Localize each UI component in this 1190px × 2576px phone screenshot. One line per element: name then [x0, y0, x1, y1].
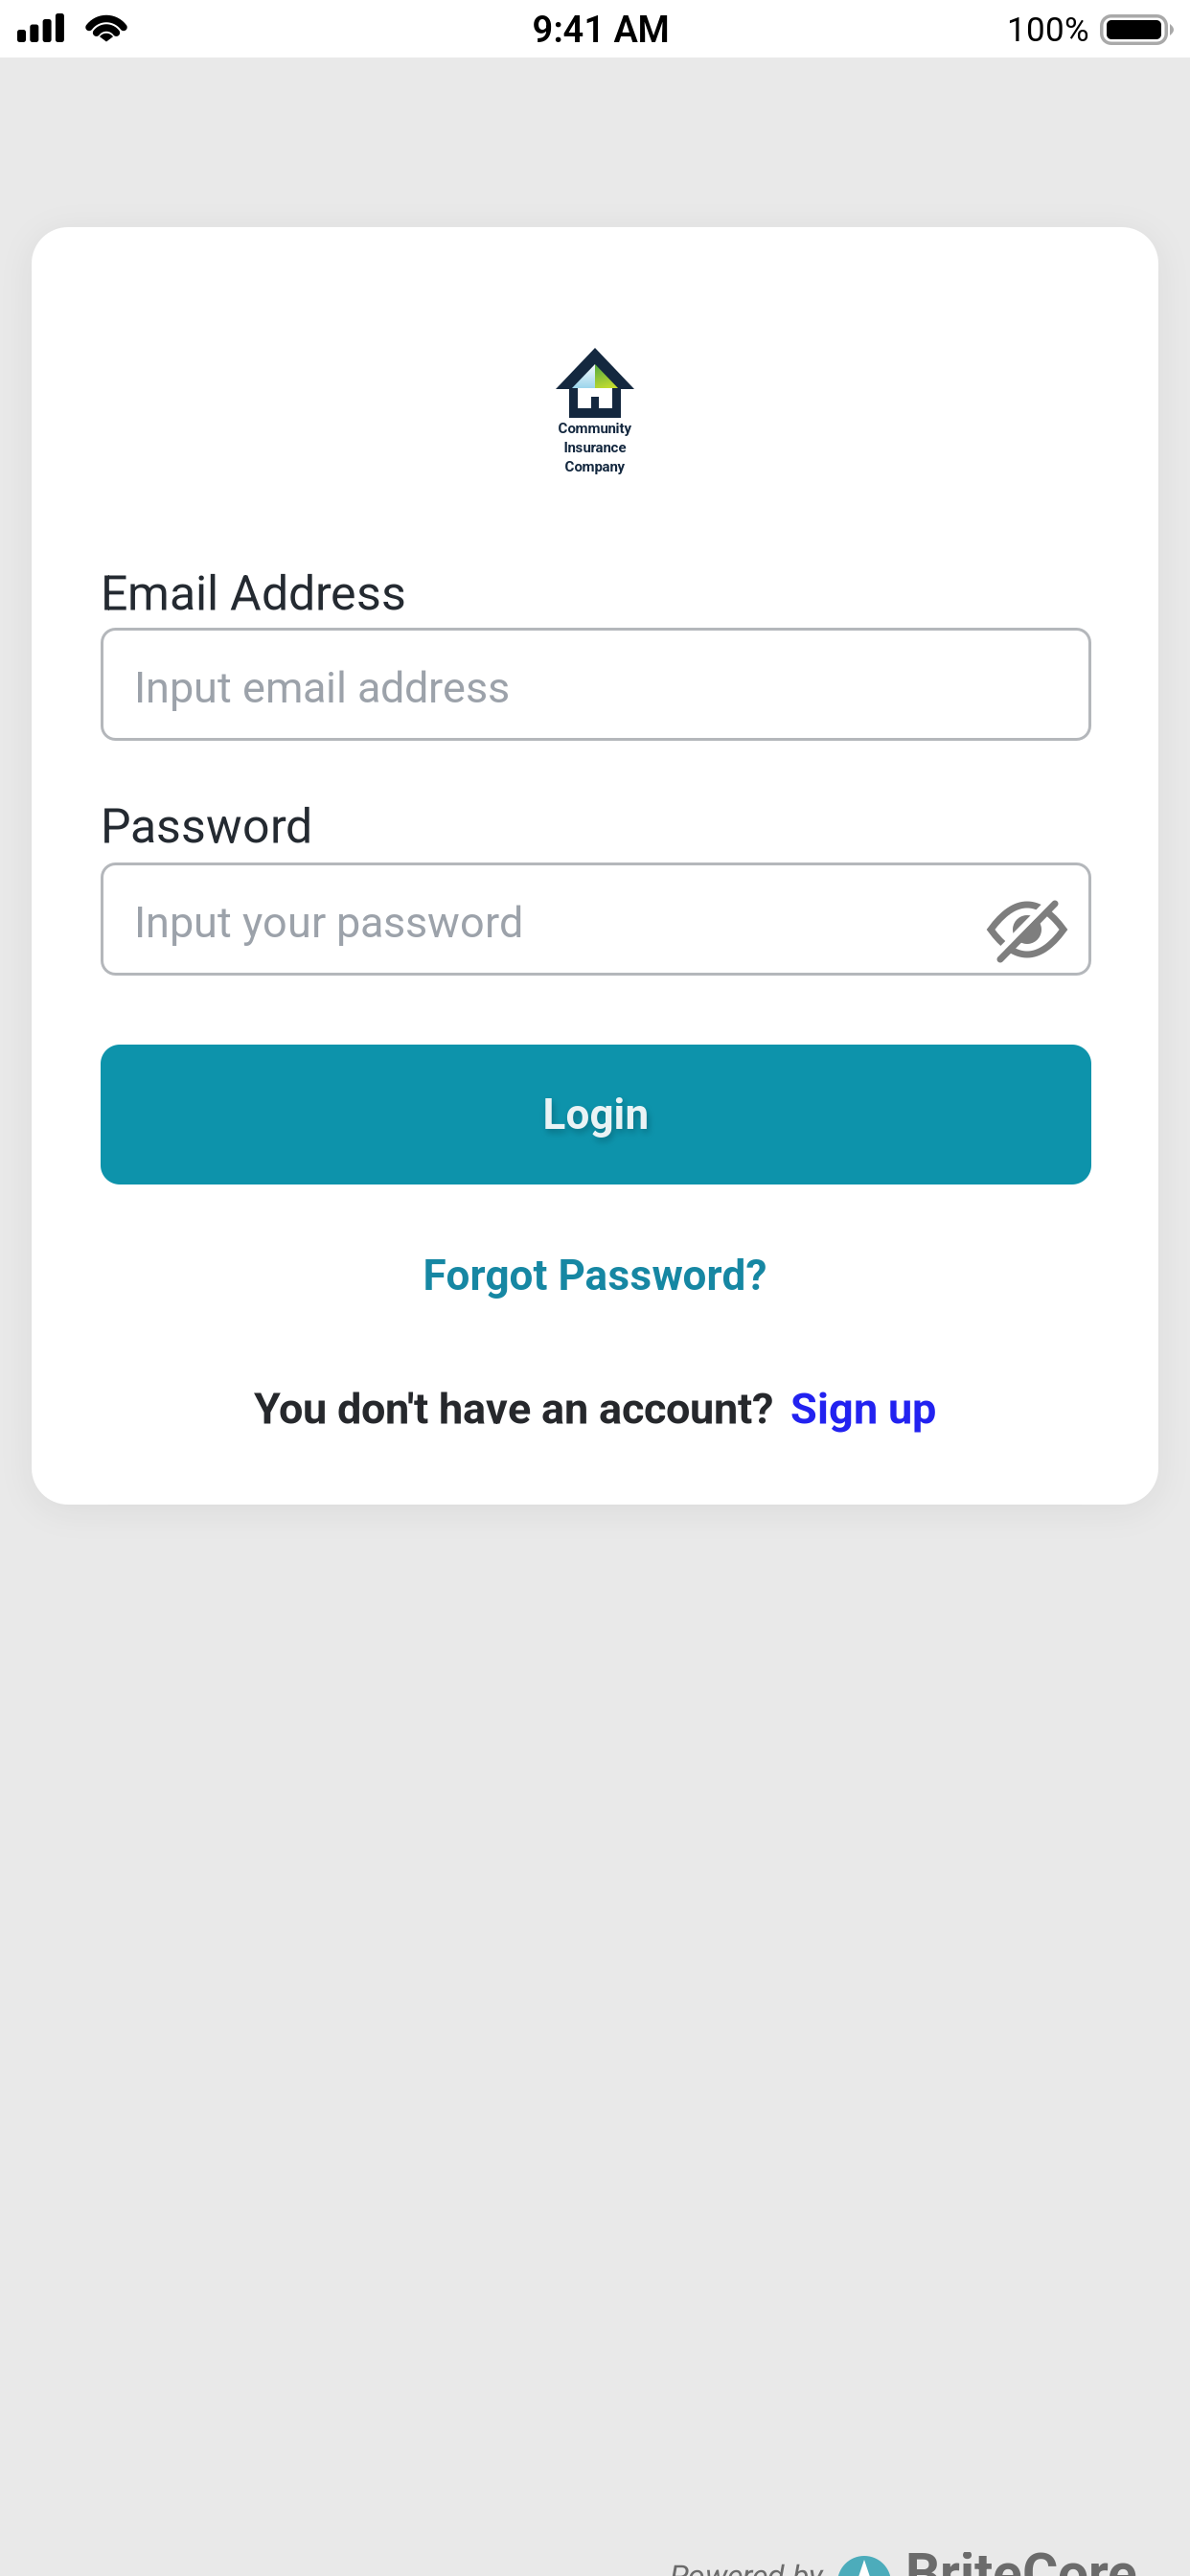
staticText: Forgot Password? — [423, 1251, 767, 1300]
staticText: Community — [558, 420, 632, 437]
staticText: Powered by — [670, 2558, 823, 2576]
staticText: Insurance — [564, 439, 626, 456]
staticText: Email Address — [101, 565, 406, 622]
staticText: Input your password — [134, 897, 523, 948]
staticText: Password — [101, 798, 312, 854]
staticText: 9:41 AM — [532, 8, 669, 51]
staticText: Login — [543, 1090, 649, 1139]
button[interactable]: Forgot Password? — [389, 1242, 801, 1309]
button[interactable]: Input your password — [101, 862, 1091, 976]
staticText: Company — [565, 458, 625, 475]
staticText: BriteCore — [905, 2541, 1137, 2576]
staticText: Sign up — [790, 1383, 936, 1434]
staticText: 100% — [1007, 10, 1089, 49]
button[interactable]: Sign up — [790, 1383, 936, 1434]
staticText: Input email address — [134, 662, 510, 713]
staticText: You don't have an account? — [254, 1383, 773, 1434]
button[interactable]: Input email address — [101, 628, 1091, 741]
button[interactable]: Show password — [974, 873, 1080, 978]
button[interactable]: Login — [101, 1045, 1091, 1184]
